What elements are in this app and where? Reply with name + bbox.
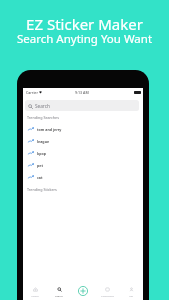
staticText: Search Anyting You Want bbox=[0, 31, 169, 47]
button[interactable]: tom and jerry bbox=[23, 123, 143, 135]
staticText: 9:13 AM bbox=[75, 90, 89, 95]
button[interactable]: Search bbox=[47, 284, 71, 300]
staticText: pet bbox=[37, 163, 43, 168]
staticText: cat bbox=[37, 175, 43, 180]
button[interactable]: Home bbox=[23, 284, 47, 300]
button[interactable]: Search bbox=[25, 100, 139, 111]
button[interactable]: cat bbox=[23, 171, 143, 183]
staticText: Me bbox=[129, 294, 133, 297]
button[interactable]: pet bbox=[23, 159, 143, 171]
staticText: Trending Searches bbox=[27, 115, 59, 120]
staticText: Search bbox=[35, 103, 50, 109]
button[interactable]: Me bbox=[119, 284, 143, 300]
staticText: kpop bbox=[37, 151, 47, 156]
staticText: EZ Sticker Maker bbox=[0, 14, 169, 34]
staticText: Carrier bbox=[26, 90, 38, 95]
staticText: Collections bbox=[101, 294, 114, 297]
staticText: tom and jerry bbox=[37, 127, 62, 132]
staticText: Trending Stickers bbox=[27, 187, 57, 192]
staticText: Search bbox=[55, 294, 63, 297]
button[interactable]: league bbox=[23, 135, 143, 147]
staticText: Home bbox=[31, 294, 39, 297]
staticText: league bbox=[37, 139, 50, 144]
button[interactable]: kpop bbox=[23, 147, 143, 159]
button[interactable]: Create sticker bbox=[71, 284, 95, 300]
button[interactable]: Collections bbox=[95, 284, 119, 300]
